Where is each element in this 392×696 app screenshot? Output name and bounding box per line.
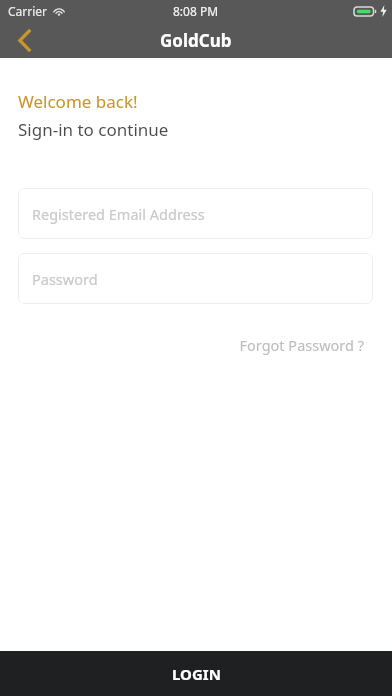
button[interactable]: LOGIN bbox=[0, 651, 392, 696]
staticText: Password bbox=[32, 269, 98, 289]
staticText: Registered Email Address bbox=[32, 204, 205, 224]
button[interactable]: Password bbox=[18, 253, 373, 304]
button[interactable]: Forgot Password ? bbox=[211, 331, 392, 359]
staticText: Sign-in to continue bbox=[18, 118, 169, 141]
staticText: GoldCub bbox=[160, 29, 232, 52]
button[interactable]: Registered Email Address bbox=[18, 188, 373, 239]
button[interactable]: Back bbox=[0, 22, 48, 58]
staticText: Forgot Password ? bbox=[239, 335, 364, 355]
staticText: Welcome back! bbox=[18, 90, 138, 113]
staticText: 8:08 PM bbox=[173, 3, 219, 19]
staticText: LOGIN bbox=[172, 664, 221, 684]
staticText: Carrier bbox=[8, 3, 48, 19]
